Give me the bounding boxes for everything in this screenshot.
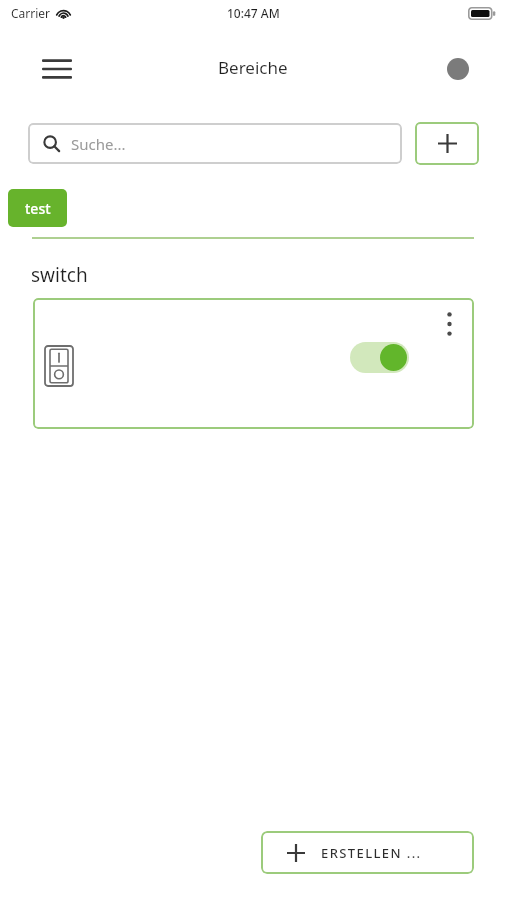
staticText: switch (31, 262, 88, 288)
button[interactable]: Add area (415, 122, 479, 165)
button[interactable]: Suche... (28, 123, 402, 164)
button[interactable]: test (8, 189, 67, 227)
staticText: Bereiche (218, 56, 288, 79)
button[interactable]: More options (434, 304, 464, 344)
button[interactable]: Profile (437, 48, 479, 90)
staticText: ERSTELLEN ... (321, 844, 422, 862)
button[interactable]: Toggle switch (350, 342, 409, 373)
staticText: Suche... (71, 134, 126, 154)
staticText: test (25, 199, 51, 218)
button[interactable]: ERSTELLEN ... (261, 831, 474, 874)
button[interactable]: Menu (32, 48, 82, 90)
button[interactable]: More options (33, 298, 474, 429)
staticText: Carrier (11, 5, 51, 21)
staticText: 10:47 AM (227, 5, 280, 21)
